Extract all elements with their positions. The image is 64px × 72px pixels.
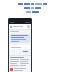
- button[interactable]: [10, 34, 30, 43]
- button[interactable]: Menu: [10, 26, 12, 28]
- button[interactable]: [10, 45, 30, 49]
- button[interactable]: [21, 50, 30, 53]
- button[interactable]: Account: [27, 25, 30, 28]
- button[interactable]: Menu: [9, 24, 31, 29]
- button[interactable]: [10, 68, 30, 71]
